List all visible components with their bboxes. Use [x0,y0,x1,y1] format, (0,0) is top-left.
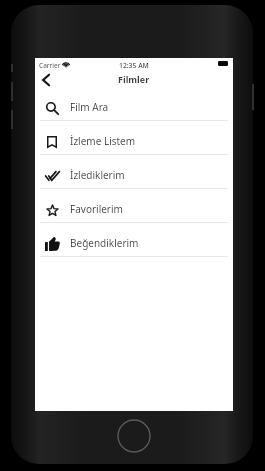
staticText: Carrier [39,61,61,70]
staticText: Filmler [118,73,150,85]
button[interactable]: Beğendiklerim [35,223,233,256]
staticText: Film Ara [70,100,109,114]
staticText: 12:35 AM [119,61,149,70]
button[interactable]: Film Ara [35,87,233,120]
staticText: İzleme Listem [70,134,136,148]
button[interactable]: Back [36,71,55,88]
staticText: Beğendiklerim [70,236,139,250]
staticText: İzlediklerim [70,168,125,182]
button[interactable]: Favorilerim [35,189,233,222]
staticText: Favorilerim [70,202,123,216]
button[interactable]: İzlediklerim [35,155,233,188]
button[interactable]: İzleme Listem [35,121,233,154]
